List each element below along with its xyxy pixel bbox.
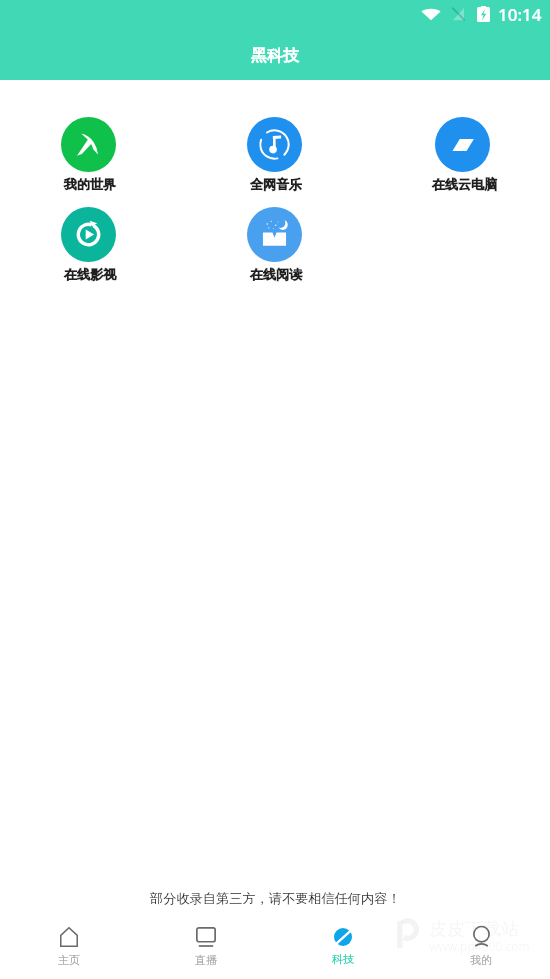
- button[interactable]: 我的: [412, 915, 550, 979]
- button[interactable]: 全网音乐: [224, 115, 324, 197]
- button[interactable]: 在线云电脑: [412, 115, 512, 197]
- staticText: 皮皮下载站: [429, 918, 519, 941]
- staticText: 黑科技: [251, 46, 299, 66]
- staticText: 在线云电脑: [432, 176, 497, 192]
- button[interactable]: 主页: [0, 915, 137, 979]
- staticText: 10:14: [498, 3, 542, 26]
- staticText: 在线影视: [64, 266, 116, 282]
- staticText: 部分收录自第三方，请不要相信任何内容！: [150, 890, 401, 907]
- button[interactable]: 直播: [137, 915, 274, 979]
- staticText: 直播: [195, 953, 217, 967]
- staticText: www.pp4000.com: [429, 938, 530, 954]
- button[interactable]: 在线阅读: [224, 205, 324, 287]
- staticText: 科技: [332, 952, 354, 966]
- button[interactable]: 科技: [274, 915, 412, 979]
- staticText: 我的世界: [64, 176, 116, 192]
- staticText: 主页: [58, 953, 80, 967]
- staticText: 我的: [470, 953, 492, 967]
- staticText: 全网音乐: [250, 176, 302, 192]
- button[interactable]: 我的世界: [38, 115, 138, 197]
- button[interactable]: 在线影视: [38, 205, 138, 287]
- staticText: 在线阅读: [250, 266, 302, 282]
